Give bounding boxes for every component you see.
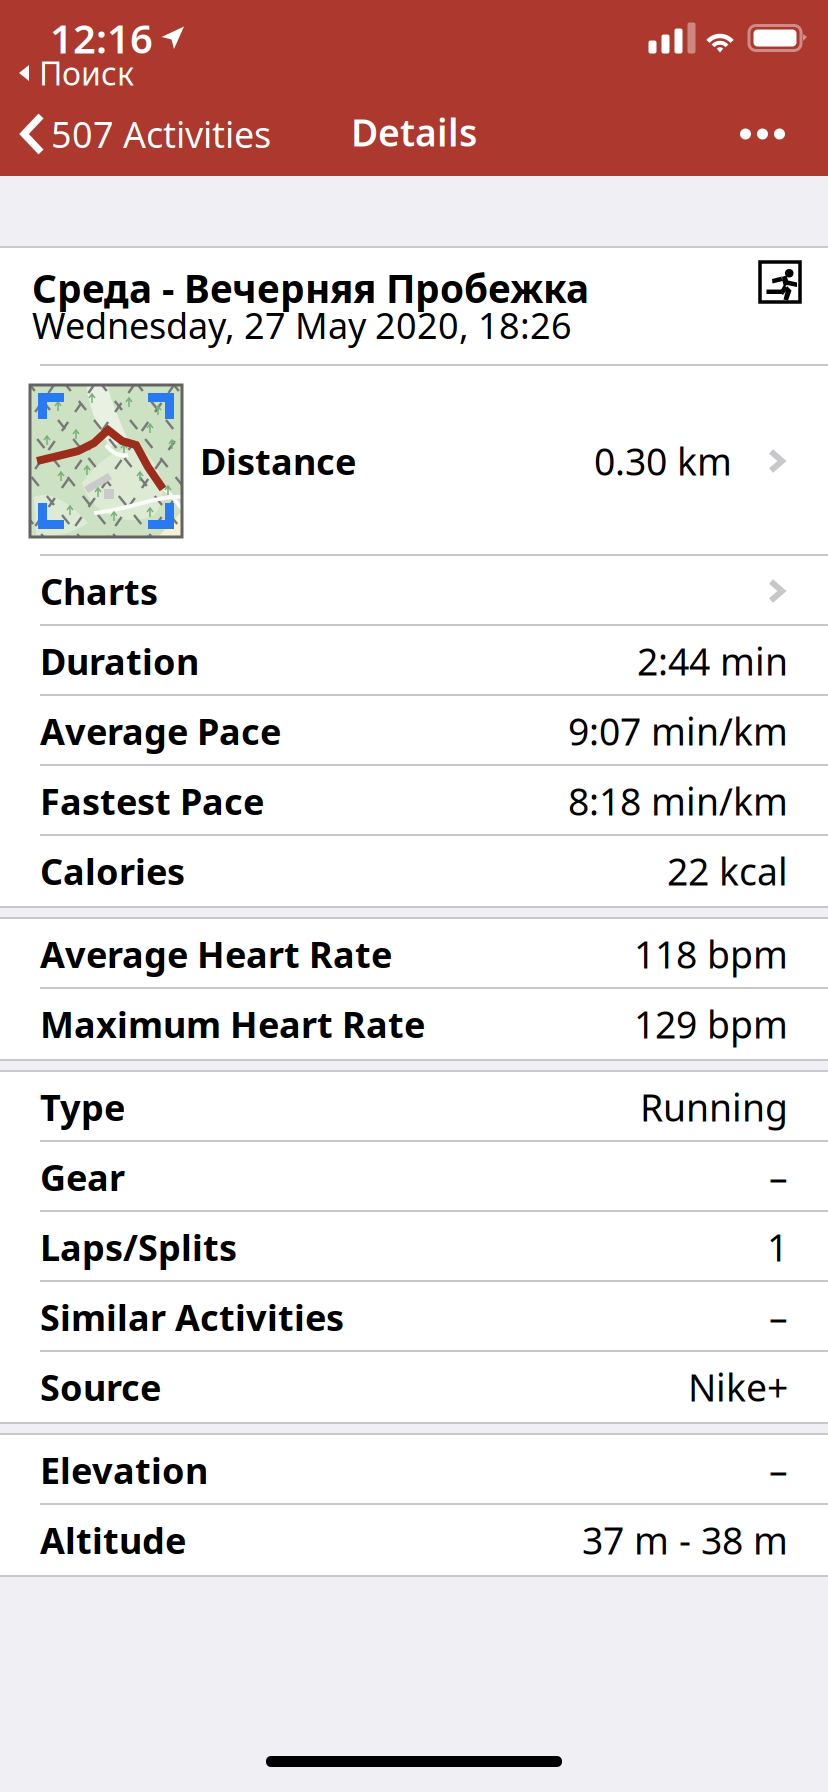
staticText: 0.30 km <box>594 436 732 486</box>
button[interactable]: Charts <box>0 556 828 626</box>
staticText: Wednesday, 27 May 2020, 18:26 <box>32 301 572 349</box>
button[interactable]: Similar Activities <box>0 1282 828 1352</box>
button[interactable]: Fastest Pace <box>0 766 828 836</box>
staticText: – <box>769 1445 788 1495</box>
staticText: 8:18 min/km <box>568 776 788 826</box>
staticText: Elevation <box>40 1446 208 1494</box>
staticText: Laps/Splits <box>40 1223 237 1271</box>
staticText: Nike+ <box>688 1362 788 1412</box>
staticText: – <box>769 1292 788 1342</box>
staticText: Distance <box>200 437 356 485</box>
staticText: 12:16 <box>50 11 153 64</box>
button[interactable]: Duration <box>0 626 828 696</box>
button[interactable]: Elevation <box>0 1435 828 1505</box>
staticText: Type <box>40 1083 125 1131</box>
button[interactable]: Altitude <box>0 1505 828 1575</box>
staticText: – <box>769 1152 788 1202</box>
button[interactable]: Calories <box>0 836 828 906</box>
staticText: 118 bpm <box>634 929 788 979</box>
staticText: Source <box>40 1363 161 1411</box>
staticText: Maximum Heart Rate <box>40 1000 425 1048</box>
staticText: Calories <box>40 847 185 895</box>
button[interactable]: 507 Activities <box>0 110 271 166</box>
staticText: 1 <box>767 1222 788 1272</box>
staticText: Average Heart Rate <box>40 930 392 978</box>
staticText: 129 bpm <box>634 999 788 1049</box>
button[interactable]: Average Pace <box>0 696 828 766</box>
staticText: Running <box>640 1082 788 1132</box>
button[interactable]: More options <box>700 112 828 163</box>
staticText: Details <box>351 107 477 157</box>
button[interactable]: Maximum Heart Rate <box>0 989 828 1059</box>
button[interactable]: Average Heart Rate <box>0 919 828 989</box>
staticText: Duration <box>40 637 199 685</box>
button[interactable]: Type <box>0 1072 828 1142</box>
staticText: 507 Activities <box>51 110 271 158</box>
staticText: Среда - Вечерняя Пробежка <box>32 262 589 314</box>
button[interactable]: Поиск <box>0 57 134 89</box>
staticText: 2:44 min <box>637 636 788 686</box>
staticText: Altitude <box>40 1516 186 1564</box>
staticText: Gear <box>40 1153 125 1201</box>
staticText: Charts <box>40 567 158 615</box>
staticText: Similar Activities <box>40 1293 344 1341</box>
staticText: Поиск <box>39 52 134 94</box>
staticText: Fastest Pace <box>40 777 264 825</box>
staticText: 22 kcal <box>667 846 788 896</box>
button[interactable]: Laps/Splits <box>0 1212 828 1282</box>
staticText: 37 m - 38 m <box>582 1515 788 1565</box>
button[interactable]: Distance <box>0 366 828 556</box>
button[interactable]: Source <box>0 1352 828 1422</box>
button[interactable]: Gear <box>0 1142 828 1212</box>
staticText: 9:07 min/km <box>568 706 788 756</box>
staticText: Average Pace <box>40 707 281 755</box>
